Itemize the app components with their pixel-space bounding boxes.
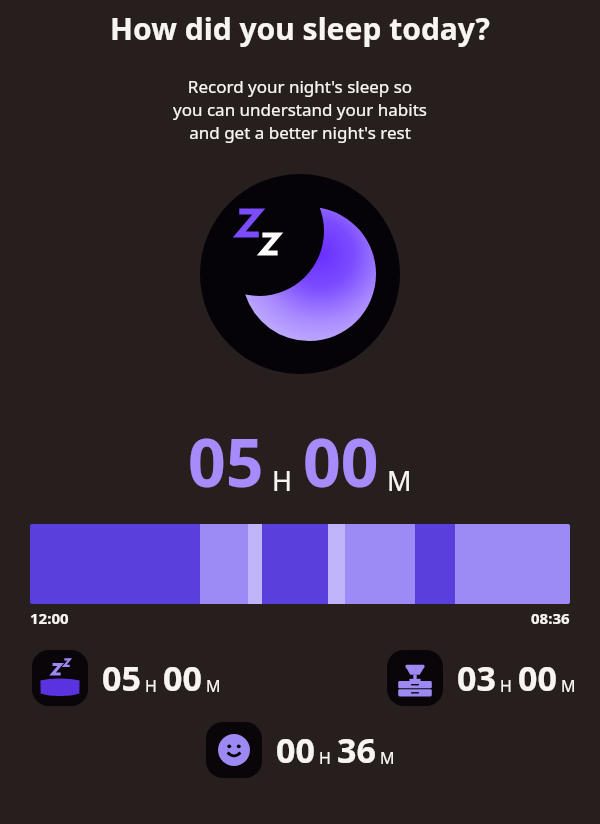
staticText: M: [206, 675, 221, 697]
button[interactable]: Time asleep: [32, 650, 221, 706]
staticText: H: [319, 747, 331, 769]
button[interactable]: Time in bed: [387, 650, 576, 706]
staticText: H: [145, 675, 157, 697]
staticText: 00: [276, 727, 315, 773]
button[interactable]: [30, 524, 570, 604]
staticText: 03: [457, 655, 496, 701]
staticText: M: [387, 462, 412, 499]
staticText: H: [500, 675, 512, 697]
staticText: 05: [188, 416, 264, 506]
staticText: 00: [303, 416, 379, 506]
staticText: 12:00: [30, 608, 69, 628]
staticText: M: [380, 747, 395, 769]
staticText: Record your night's sleep so you can und…: [0, 75, 600, 144]
staticText: 05: [102, 655, 141, 701]
staticText: 00: [163, 655, 202, 701]
staticText: How did you sleep today?: [0, 8, 600, 49]
staticText: H: [272, 462, 293, 499]
staticText: 00: [518, 655, 557, 701]
button[interactable]: Time awake: [206, 722, 395, 778]
staticText: 36: [337, 727, 376, 773]
staticText: 08:36: [531, 608, 570, 628]
staticText: M: [561, 675, 576, 697]
